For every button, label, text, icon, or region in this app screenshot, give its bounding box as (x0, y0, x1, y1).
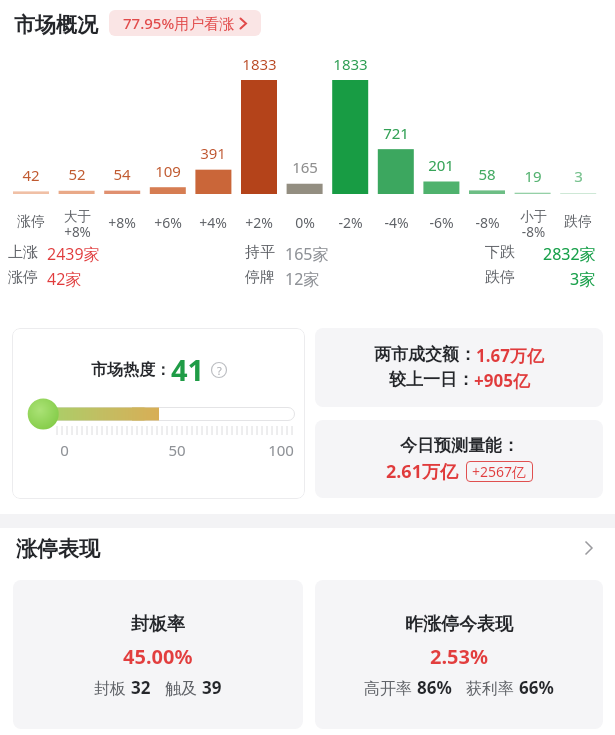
staticText: 1.67万亿 (476, 344, 544, 367)
staticText: 1833 (333, 54, 368, 74)
staticText: 201 (428, 155, 454, 175)
staticText: 昨涨停今表现 (405, 613, 513, 636)
staticText: 19 (524, 166, 542, 186)
staticText: 45.00% (123, 643, 193, 670)
staticText: 2.53% (430, 643, 488, 670)
button[interactable]: 今日预测量能： (315, 420, 603, 498)
staticText: 获利率 (466, 677, 519, 699)
staticText: 跌停 (564, 213, 592, 231)
staticText: 0 (60, 440, 69, 460)
staticText: 涨停 (8, 268, 38, 287)
staticText: 市场概况 (14, 12, 98, 38)
staticText: 165家 (285, 243, 329, 265)
staticText: +2567亿 (472, 462, 527, 481)
staticText: 大于 +8% (64, 208, 91, 241)
staticText: 39 (202, 676, 222, 699)
staticText: 66% (519, 676, 554, 699)
staticText: 持平 (245, 243, 275, 262)
button[interactable]: 封板率 (13, 580, 303, 729)
staticText: 86% (417, 676, 452, 699)
staticText: 52 (68, 164, 86, 184)
staticText: +6% (154, 213, 182, 232)
staticText: 涨停表现 (16, 536, 100, 562)
staticText: +8% (108, 213, 136, 232)
staticText: 上涨 (8, 243, 38, 262)
staticText: -2% (338, 213, 363, 232)
staticText: 封板率 (131, 613, 185, 636)
staticText: -6% (429, 213, 454, 232)
staticText: 2832家 (543, 243, 596, 265)
button[interactable]: 77.95%用户看涨 (109, 10, 261, 36)
staticText: 涨停 (17, 213, 45, 231)
staticText: -8% (475, 213, 500, 232)
staticText: 触及 (165, 677, 202, 699)
staticText: 跌停 (485, 268, 515, 287)
staticText: 市场热度： (91, 360, 171, 380)
staticText: 高开率 (364, 677, 417, 699)
staticText: 77.95%用户看涨 (123, 13, 235, 33)
staticText: 3 (574, 166, 583, 186)
staticText: ? (217, 363, 222, 378)
staticText: 2439家 (47, 243, 100, 265)
staticText: 小于 -8% (520, 208, 547, 241)
staticText: 较上一日： (389, 369, 474, 390)
staticText: +4% (199, 213, 227, 232)
staticText: +905亿 (474, 369, 530, 392)
staticText: 165 (292, 157, 318, 177)
button[interactable]: 两市成交额： (315, 328, 603, 407)
staticText: 12家 (285, 268, 320, 290)
staticText: 391 (200, 143, 226, 163)
staticText: 58 (478, 164, 496, 184)
staticText: 32 (131, 676, 151, 699)
staticText: 3家 (570, 268, 596, 290)
staticText: 109 (155, 161, 181, 181)
staticText: -4% (384, 213, 409, 232)
staticText: 721 (383, 123, 409, 143)
staticText: 封板 (94, 677, 131, 699)
staticText: 两市成交额： (374, 344, 476, 365)
staticText: 50 (168, 440, 186, 460)
staticText: +2% (245, 213, 273, 232)
staticText: 1833 (242, 54, 277, 74)
staticText: 42家 (47, 268, 82, 290)
button[interactable] (575, 536, 603, 560)
staticText: 100 (268, 440, 294, 460)
staticText: 54 (113, 164, 131, 184)
staticText: 2.61万亿 (386, 459, 458, 484)
staticText: 停牌 (245, 268, 275, 287)
staticText: 41 (171, 350, 205, 389)
staticText: 0% (295, 213, 315, 232)
staticText: 42 (22, 165, 40, 185)
staticText: 下跌 (485, 243, 515, 262)
button[interactable]: 市场热度： (12, 328, 305, 499)
staticText: 今日预测量能： (400, 435, 519, 456)
button[interactable]: 昨涨停今表现 (315, 580, 603, 729)
